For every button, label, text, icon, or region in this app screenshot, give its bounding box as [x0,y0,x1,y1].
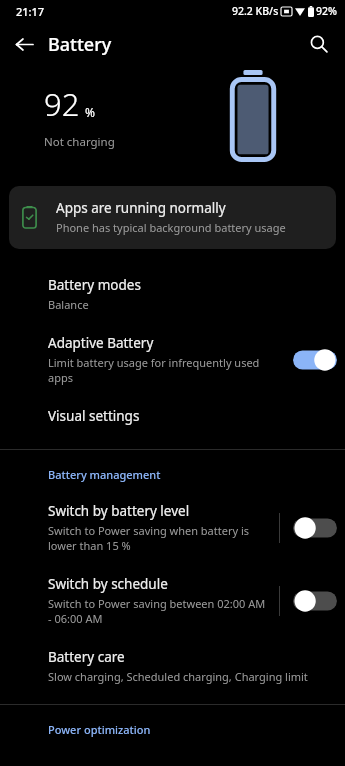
button[interactable]: Battery modes [0,265,345,323]
button[interactable]: Back [6,26,42,62]
button[interactable]: Search [301,26,337,62]
button[interactable]: Battery care [0,637,345,695]
staticText: Adaptive Battery [48,334,154,352]
staticText: % [85,104,95,120]
button[interactable]: Switch by battery level [0,491,345,564]
button[interactable]: Apps are running normally [9,186,336,249]
staticText: Switch to Power saving between 02:00 AM … [48,596,267,626]
staticText: Switch by battery level [48,502,190,520]
staticText: Battery care [48,648,125,666]
staticText: 92.2 KB/s [232,4,279,18]
staticText: Phone has typical background battery usa… [56,220,286,235]
staticText: Limit battery usage for infrequently use… [48,355,281,385]
button[interactable]: Adaptive Battery [0,323,345,396]
button[interactable]: Switch by schedule [293,588,337,614]
staticText: Balance [48,297,89,312]
staticText: Switch by schedule [48,575,168,593]
staticText: Apps are running normally [56,199,226,217]
staticText: Battery [48,32,112,57]
staticText: Visual settings [48,407,140,425]
staticText: Battery modes [48,276,141,294]
button[interactable]: Adaptive Battery [293,347,337,373]
button[interactable]: Visual settings [0,396,345,436]
button[interactable]: Switch by battery level [293,515,337,541]
staticText: Slow charging, Scheduled charging, Charg… [48,669,308,684]
button[interactable]: Switch by schedule [0,564,345,637]
staticText: Not charging [44,134,115,150]
staticText: 21:17 [16,4,45,19]
staticText: 92 [44,83,80,125]
staticText: Power optimization [48,722,151,737]
staticText: 92% [316,4,337,18]
staticText: Battery management [48,467,161,482]
staticText: Switch to Power saving when battery is l… [48,523,267,553]
